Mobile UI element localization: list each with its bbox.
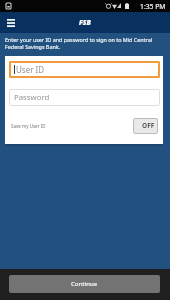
staticText: Password [14,92,50,103]
staticText: 1:35 PM [140,2,166,11]
button[interactable]: Continue [9,275,160,293]
button[interactable]: Save my User ID toggle, off [133,118,158,134]
staticText: Continue [71,280,98,288]
button[interactable]: Open navigation menu [0,12,22,33]
staticText: User ID [16,64,45,75]
button[interactable]: Password [9,89,160,106]
staticText: OFF [142,121,155,130]
staticText: Enter your user ID and password to sign … [5,36,153,51]
button[interactable]: User ID [9,61,160,78]
staticText: Save my User ID [11,123,46,129]
staticText: FSB [79,18,91,27]
